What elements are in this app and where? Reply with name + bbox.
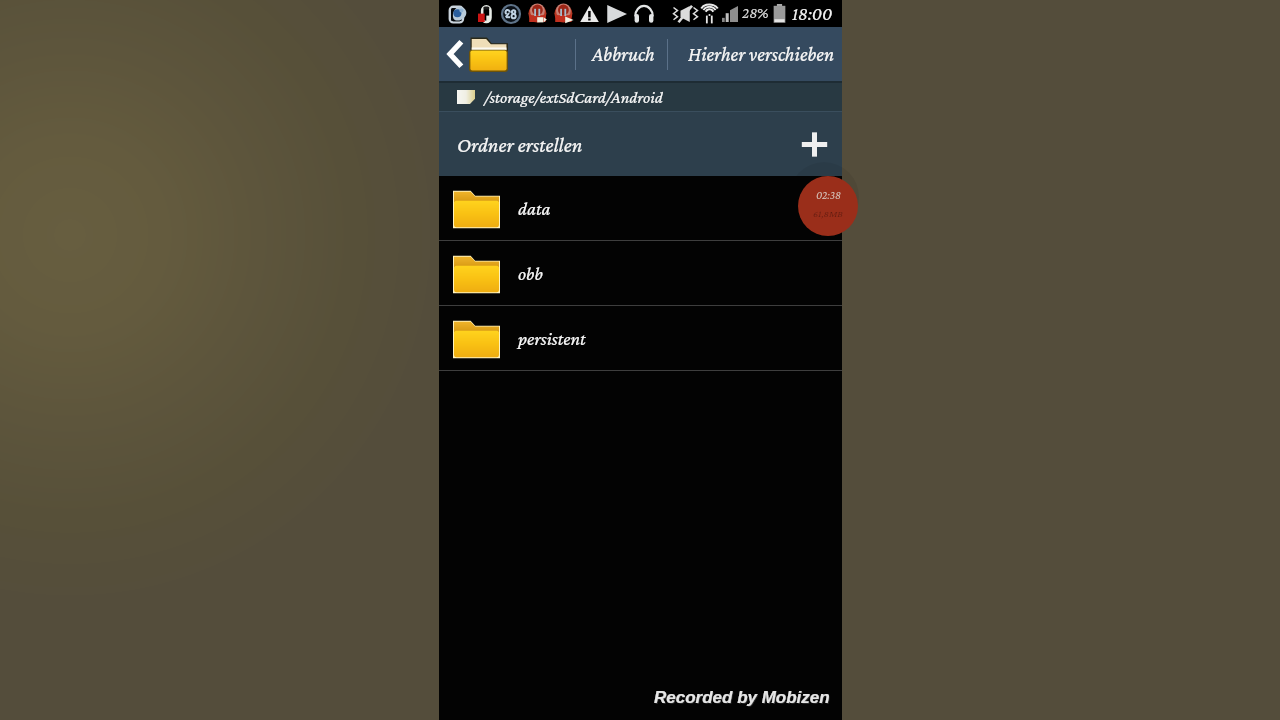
staticText: Recorded by Mobizen — [655, 689, 831, 708]
button[interactable]: obb — [439, 241, 842, 305]
staticText: data — [518, 198, 551, 219]
staticText: 28% — [742, 5, 769, 22]
staticText: Recorded by Mobizen — [654, 688, 830, 707]
button[interactable]: Create new folder — [801, 131, 828, 158]
staticText: 18:00 — [792, 4, 833, 24]
button[interactable]: persistent — [439, 306, 842, 370]
staticText: persistent — [518, 328, 586, 349]
button[interactable]: Back to parent folder — [439, 30, 518, 78]
staticText: 61,8MB — [813, 208, 843, 219]
button[interactable]: Ordner erstellen — [439, 112, 842, 176]
button[interactable]: Hierher verschieben — [668, 28, 842, 80]
staticText: Hierher verschieben — [688, 43, 835, 65]
staticText: Abbruch — [592, 43, 655, 65]
staticText: 02:38 — [816, 189, 841, 201]
staticText: /storage/extSdCard/Android — [484, 88, 663, 107]
staticText: obb — [518, 263, 543, 284]
staticText: Ordner erstellen — [457, 133, 583, 156]
button[interactable]: /storage/extSdCard/Android — [439, 83, 842, 111]
button[interactable]: data — [439, 176, 842, 240]
button[interactable]: Abbruch — [576, 28, 667, 80]
